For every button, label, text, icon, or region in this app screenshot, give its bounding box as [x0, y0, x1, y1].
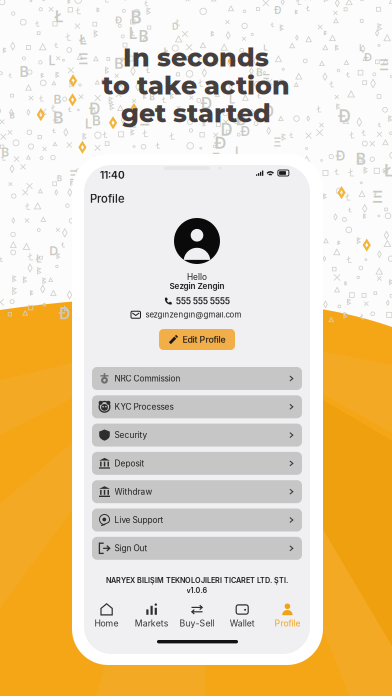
- staticText: 11:40: [100, 169, 125, 181]
- staticText: B: [57, 173, 62, 183]
- staticText: Ð: [191, 259, 200, 273]
- staticText: Ξ: [184, 162, 191, 175]
- button[interactable]: Profile: [265, 603, 310, 628]
- staticText: sezginzengin@gmail.com: [145, 310, 241, 319]
- staticText: B: [9, 111, 14, 120]
- staticText: Ł: [163, 46, 170, 59]
- staticText: L: [235, 143, 242, 158]
- button[interactable]: Deposit: [92, 452, 302, 475]
- staticText: B: [356, 150, 366, 168]
- staticText: Ƀ: [256, 67, 263, 79]
- staticText: Ξ: [69, 168, 78, 183]
- staticText: D: [49, 243, 58, 258]
- staticText: Edit Profile: [182, 334, 225, 345]
- staticText: Ð: [262, 102, 273, 121]
- staticText: Ð: [59, 304, 71, 323]
- staticText: to take action: [102, 70, 290, 101]
- staticText: Sezgin Zengin: [169, 281, 224, 291]
- staticText: Home: [95, 618, 119, 628]
- staticText: Profile: [90, 192, 125, 206]
- staticText: Ð: [200, 94, 212, 113]
- staticText: Ξ: [379, 56, 389, 74]
- staticText: Deposit: [114, 458, 144, 468]
- staticText: Ł: [383, 160, 392, 181]
- staticText: B: [92, 113, 101, 129]
- staticText: Ł: [36, 253, 42, 265]
- staticText: L: [48, 53, 55, 68]
- staticText: In seconds: [123, 42, 269, 73]
- staticText: Ξ: [212, 150, 220, 165]
- staticText: Ƀ: [53, 108, 64, 127]
- button[interactable]: Wallet: [220, 603, 265, 628]
- staticText: Ł: [54, 7, 63, 26]
- button[interactable]: Live Support: [92, 508, 302, 531]
- staticText: B: [114, 55, 123, 72]
- staticText: Live Support: [114, 515, 163, 525]
- staticText: KYC Processes: [114, 402, 173, 412]
- button[interactable]: NRC Commission: [92, 367, 302, 390]
- staticText: Ð: [219, 291, 232, 312]
- staticText: Ð: [89, 99, 101, 118]
- staticText: Ƀ: [236, 111, 246, 129]
- staticText: Ð: [240, 123, 250, 139]
- staticText: Ξ: [262, 72, 270, 86]
- staticText: Ł: [79, 32, 87, 48]
- button[interactable]: Edit Profile: [159, 329, 235, 350]
- staticText: NRC Commission: [114, 373, 180, 383]
- staticText: L: [263, 43, 268, 52]
- staticText: Ð: [335, 148, 345, 164]
- staticText: B: [53, 92, 61, 107]
- staticText: get started: [121, 98, 271, 129]
- button[interactable]: Buy-Sell: [174, 603, 220, 628]
- staticText: Withdraw: [114, 487, 152, 497]
- button[interactable]: Withdraw: [92, 480, 302, 503]
- staticText: Ð: [115, 14, 122, 26]
- staticText: v1.0.6: [186, 586, 207, 595]
- staticText: Markets: [135, 618, 169, 628]
- button[interactable]: Markets: [129, 603, 174, 628]
- staticText: Ð: [214, 133, 226, 153]
- staticText: Buy-Sell: [179, 618, 214, 628]
- staticText: Ξ: [140, 110, 151, 129]
- staticText: Wallet: [230, 618, 255, 628]
- staticText: Profile: [274, 618, 300, 628]
- staticText: Ð: [338, 106, 351, 126]
- staticText: L: [85, 116, 92, 131]
- staticText: B: [138, 27, 148, 45]
- staticText: L: [129, 24, 138, 43]
- staticText: B: [1, 145, 9, 159]
- staticText: 555 555 5555: [176, 296, 230, 306]
- staticText: Ð: [364, 50, 372, 64]
- button[interactable]: KYC Processes: [92, 395, 302, 418]
- staticText: Ξ: [78, 50, 88, 68]
- button[interactable]: Home: [84, 603, 129, 628]
- staticText: L: [359, 42, 364, 54]
- staticText: Ξ: [372, 187, 383, 207]
- staticText: Hello: [187, 272, 207, 282]
- staticText: D: [172, 21, 179, 32]
- staticText: Ξ: [273, 135, 281, 149]
- button[interactable]: Security: [92, 424, 302, 447]
- staticText: NARYEX BİLİŞİM TEKNOLOJİLERİ TİCARET LTD…: [106, 576, 288, 585]
- staticText: B: [19, 63, 28, 80]
- button[interactable]: Sign Out: [92, 537, 302, 560]
- staticText: L: [229, 93, 235, 106]
- staticText: B: [170, 239, 181, 259]
- staticText: D: [220, 120, 232, 140]
- staticText: Security: [114, 430, 147, 440]
- staticText: B: [130, 7, 141, 28]
- staticText: Ƀ: [149, 92, 155, 102]
- staticText: Sign Out: [114, 543, 147, 553]
